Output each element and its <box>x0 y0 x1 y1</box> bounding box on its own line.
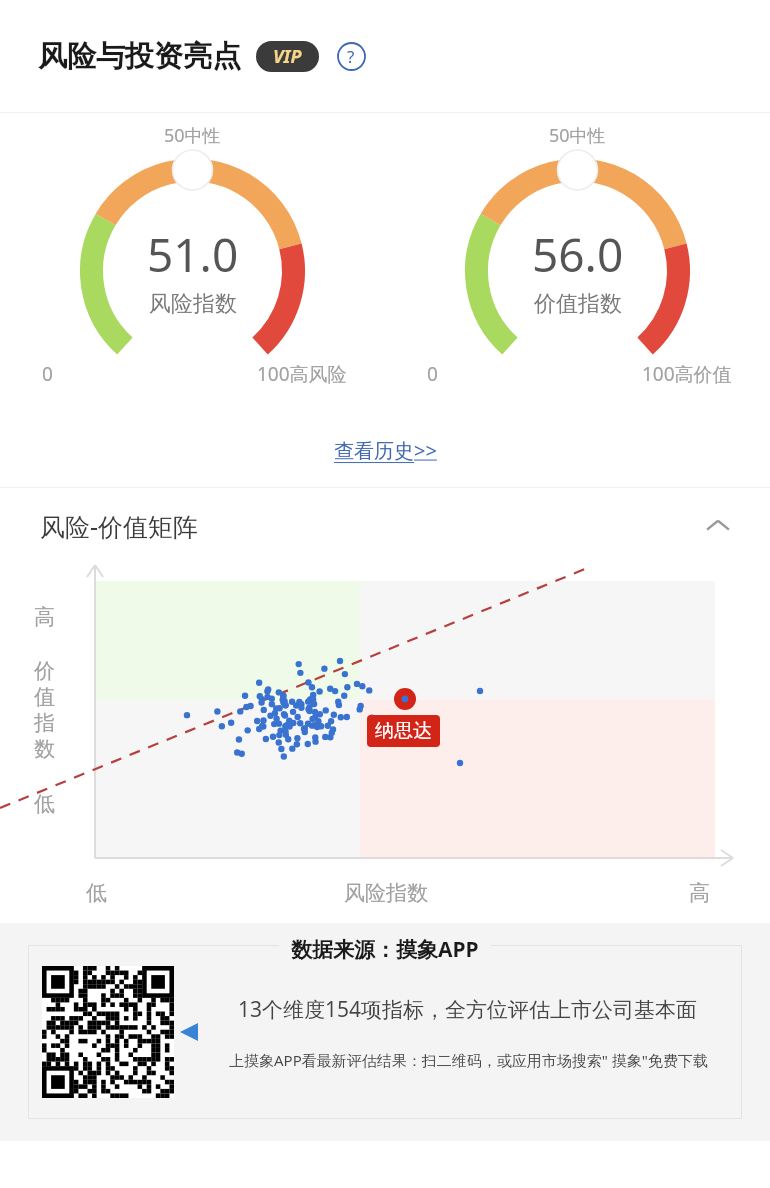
staticText: 100高风险 <box>257 361 347 387</box>
button[interactable]: 查看历史>> <box>324 431 447 470</box>
staticText: 纳思达 <box>375 719 432 743</box>
staticText: 数 <box>34 736 55 762</box>
staticText: 低 <box>86 880 107 906</box>
staticText: 风险与投资亮点 <box>38 38 241 75</box>
staticText: 50中性 <box>164 123 221 148</box>
button[interactable]: Collapse <box>696 504 740 548</box>
staticText: 价 <box>34 658 55 684</box>
staticText: 0 <box>42 361 53 387</box>
staticText: 高 <box>34 604 55 630</box>
button[interactable]: Help <box>335 40 367 72</box>
staticText: 指 <box>34 710 55 736</box>
staticText: 0 <box>427 361 438 387</box>
staticText: 100高价值 <box>642 361 732 387</box>
staticText: 56.0 <box>532 223 624 286</box>
staticText: 13个维度154项指标，全方位评估上市公司基本面 <box>238 995 698 1024</box>
staticText: 风险指数 <box>149 290 237 318</box>
staticText: 风险-价值矩阵 <box>40 509 199 543</box>
staticText: 低 <box>34 791 55 817</box>
staticText: 51.0 <box>147 223 239 286</box>
staticText: 价值指数 <box>534 290 622 318</box>
staticText: 数据来源：摸象APP <box>291 935 479 964</box>
button[interactable]: VIP <box>256 41 319 72</box>
staticText: 值 <box>34 684 55 710</box>
staticText: 风险指数 <box>344 880 428 906</box>
staticText: 高 <box>689 880 710 906</box>
staticText: ? <box>347 45 355 68</box>
staticText: 上摸象APP看最新评估结果：扫二维码，或应用市场搜索" 摸象"免费下载 <box>229 1050 708 1070</box>
staticText: 查看历史>> <box>334 437 437 464</box>
button[interactable]: 纳思达 <box>375 719 432 743</box>
staticText: VIP <box>273 44 302 69</box>
staticText: 50中性 <box>549 123 606 148</box>
